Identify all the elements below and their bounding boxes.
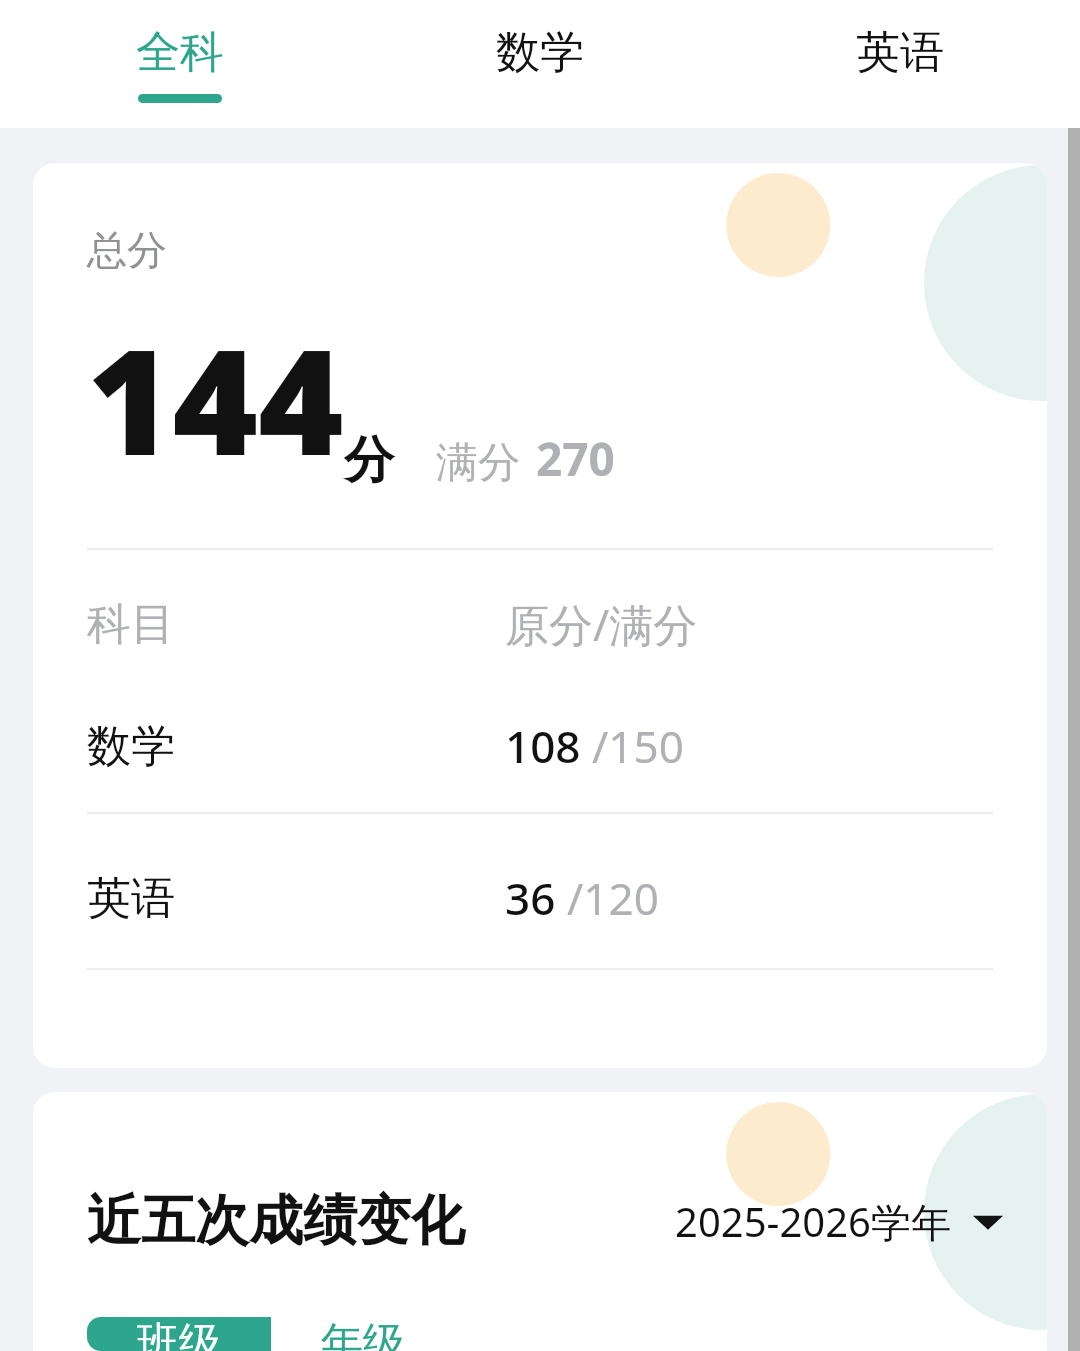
button[interactable]: 英语 [87,868,993,928]
staticText: 分 [344,429,394,492]
button[interactable]: 数学 [360,0,720,128]
staticText: 英语 [87,871,505,926]
staticText: /120 [567,868,659,928]
staticText: 英语 [856,25,944,80]
staticText: 全科 [136,25,224,80]
staticText: 班级 [137,1317,221,1351]
button[interactable]: 2025-2026学年 [675,1194,1003,1249]
staticText: 满分 [436,437,520,490]
staticText: 36 [505,868,567,928]
staticText: 数学 [496,25,584,80]
button[interactable]: 全科 [0,0,360,128]
staticText: 年级 [321,1317,405,1351]
staticText: 科目 [87,597,505,652]
staticText: 108 [505,716,592,776]
staticText: /150 [592,716,684,776]
button[interactable]: 年级 [271,1317,455,1351]
staticText: 144 [87,299,344,498]
staticText: 原分/满分 [505,594,698,654]
button[interactable]: 科目 [87,594,993,654]
button[interactable]: 英语 [720,0,1080,128]
staticText: 总分 [87,225,167,275]
staticText: 近五次成绩变化 [87,1187,465,1255]
staticText: 2025-2026学年 [675,1194,951,1249]
staticText: 数学 [87,719,505,774]
other: Select school year [973,1211,1003,1233]
button[interactable]: 数学 [87,716,993,776]
button[interactable]: 班级 [87,1317,271,1351]
staticText: 270 [536,427,615,490]
